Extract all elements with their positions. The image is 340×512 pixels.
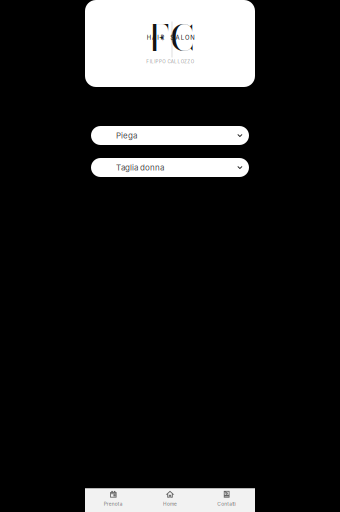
staticText: L [181,34,184,41]
staticText: I [157,34,159,41]
staticText: C [170,10,194,65]
staticText: I [154,59,155,64]
staticText: S [170,34,174,41]
staticText: H [147,34,151,41]
staticText: F [149,10,169,65]
button[interactable]: Taglia donna [91,158,249,177]
button[interactable]: Home [142,488,198,512]
staticText: Home [163,501,177,507]
staticText: L [174,59,177,64]
staticText: A [171,59,174,64]
staticText: A [175,34,179,41]
staticText: L [177,59,180,64]
staticText: P [156,59,159,64]
staticText: Piega [116,131,137,140]
staticText: Prenota [104,501,123,507]
staticText: F [146,59,149,64]
staticText: C [167,59,170,64]
staticText: I [150,59,151,64]
staticText: A [152,34,156,41]
staticText: L [151,59,154,64]
button[interactable]: Piega [91,126,249,145]
staticText: Z [187,59,190,64]
staticText: Taglia donna [116,163,164,172]
staticText: Contatti [217,501,236,507]
staticText: O [185,34,189,41]
staticText: O [181,59,184,64]
staticText: O [162,59,165,64]
staticText: O [191,59,194,64]
staticText: N [190,34,194,41]
button[interactable]: Prenota [85,488,142,512]
staticText: Z [184,59,187,64]
staticText: R [160,34,164,41]
button[interactable]: Contatti [198,488,255,512]
staticText: P [159,59,162,64]
